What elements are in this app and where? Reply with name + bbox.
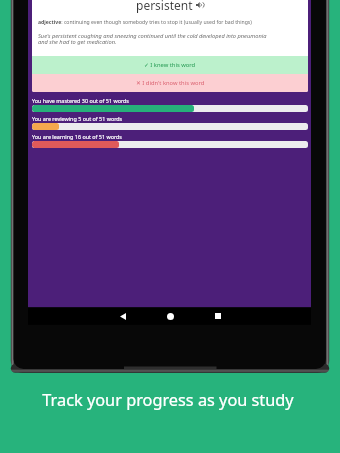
staticText: persistent [136, 0, 193, 13]
button[interactable]: Pronounce [196, 0, 204, 11]
button[interactable]: Recent apps [206, 307, 230, 325]
staticText: You are learning 16 out of 51 words [32, 133, 122, 140]
staticText: Track your progress as you study [42, 389, 294, 411]
button[interactable]: Home [158, 307, 182, 325]
staticText: adjective: continuing even though somebo… [38, 19, 252, 26]
button[interactable]: ✕ I didn't know this word [32, 74, 308, 92]
staticText: You are reviewing 5 out of 51 words [32, 115, 123, 122]
staticText: ✓ I knew this word [144, 61, 196, 69]
button[interactable]: ✓ I knew this word [32, 56, 308, 74]
staticText: Sue's persistent coughing and sneezing c… [38, 32, 267, 46]
staticText: You have mastered 30 out of 51 words [32, 97, 129, 104]
button[interactable]: Back [111, 307, 135, 325]
staticText: ✕ I didn't know this word [136, 79, 205, 87]
